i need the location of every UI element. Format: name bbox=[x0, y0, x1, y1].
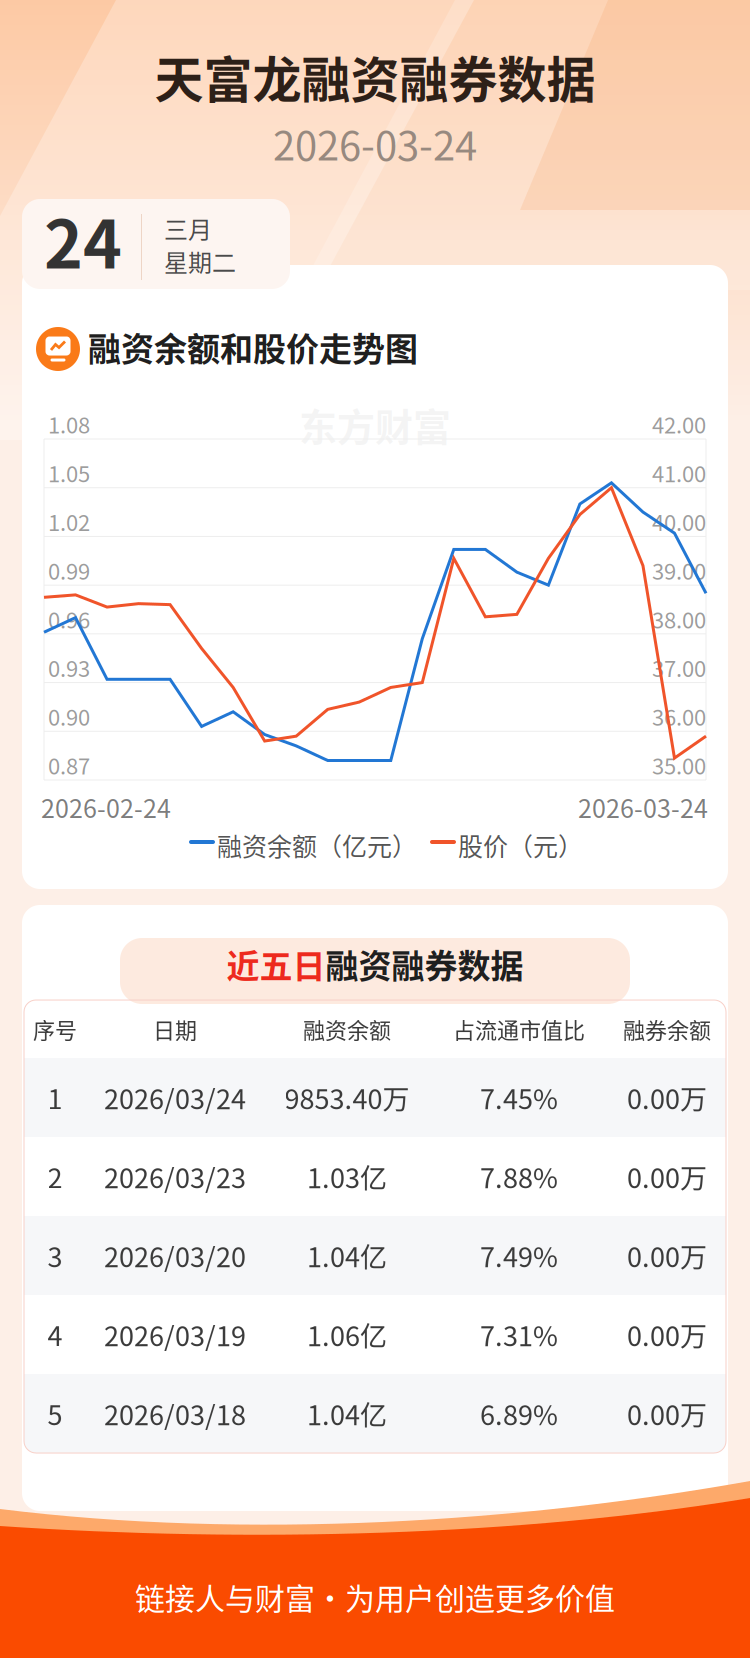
staticText: 5 bbox=[47, 1394, 62, 1433]
staticText: 2 bbox=[47, 1157, 62, 1196]
staticText: 1.04亿 bbox=[307, 1236, 387, 1275]
staticText: 1.06亿 bbox=[307, 1315, 387, 1354]
staticText: 42.00 bbox=[652, 408, 706, 440]
staticText: 0.00万 bbox=[627, 1157, 707, 1196]
staticText: 近五日 bbox=[226, 940, 325, 988]
staticText: 7.45% bbox=[480, 1078, 558, 1117]
staticText: 融资余额 bbox=[303, 1013, 391, 1045]
staticText: 2026-03-24 bbox=[273, 114, 477, 172]
staticText: 链接人与财富·为用户创造更多价值 bbox=[135, 1575, 615, 1618]
staticText: 39.00 bbox=[652, 554, 706, 586]
staticText: 37.00 bbox=[652, 652, 706, 683]
staticText: 1.02 bbox=[48, 505, 90, 537]
staticText: 0.99 bbox=[48, 554, 90, 586]
staticText: 35.00 bbox=[652, 749, 706, 781]
staticText: 0.00万 bbox=[627, 1315, 707, 1354]
staticText: 1 bbox=[47, 1078, 62, 1117]
staticText: 序号 bbox=[33, 1013, 77, 1045]
staticText: 融资余额和股价走势图 bbox=[88, 323, 418, 371]
staticText: 三月 bbox=[164, 211, 212, 246]
staticText: 占流通市值比 bbox=[453, 1013, 585, 1045]
staticText: 2026/03/23 bbox=[104, 1157, 246, 1196]
staticText: 3 bbox=[47, 1236, 62, 1275]
staticText: 1.04亿 bbox=[307, 1394, 387, 1433]
staticText: 0.96 bbox=[48, 603, 90, 635]
staticText: 36.00 bbox=[652, 700, 706, 732]
staticText: 2026/03/24 bbox=[104, 1078, 246, 1117]
staticText: 0.93 bbox=[48, 652, 90, 683]
staticText: 7.49% bbox=[480, 1236, 558, 1275]
staticText: 40.00 bbox=[652, 505, 706, 537]
staticText: 38.00 bbox=[652, 603, 706, 635]
staticText: 0.90 bbox=[48, 700, 90, 732]
staticText: 融资余额（亿元） bbox=[217, 827, 417, 863]
staticText: 星期二 bbox=[164, 244, 236, 279]
staticText: 2026/03/20 bbox=[104, 1236, 246, 1275]
staticText: 1.03亿 bbox=[307, 1157, 387, 1196]
staticText: 1.05 bbox=[48, 457, 90, 489]
staticText: 6.89% bbox=[480, 1394, 558, 1433]
staticText: 融券余额 bbox=[623, 1013, 711, 1045]
staticText: 7.31% bbox=[480, 1315, 558, 1354]
staticText: 2026/03/18 bbox=[104, 1394, 246, 1433]
staticText: 0.00万 bbox=[627, 1394, 707, 1433]
staticText: 1.08 bbox=[48, 408, 90, 440]
staticText: 2026/03/19 bbox=[104, 1315, 246, 1354]
staticText: 24 bbox=[44, 192, 122, 288]
staticText: 股价（元） bbox=[458, 827, 583, 863]
staticText: 天富龙融资融券数据 bbox=[154, 41, 595, 112]
staticText: 日期 bbox=[153, 1013, 197, 1045]
staticText: 41.00 bbox=[652, 457, 706, 489]
staticText: 0.00万 bbox=[627, 1078, 707, 1117]
staticText: 7.88% bbox=[480, 1157, 558, 1196]
staticText: 东方财富 bbox=[299, 397, 451, 452]
staticText: 0.87 bbox=[48, 749, 90, 781]
staticText: 9853.40万 bbox=[284, 1078, 409, 1117]
staticText: 2026-03-24 bbox=[578, 789, 708, 825]
staticText: 4 bbox=[47, 1315, 62, 1354]
staticText: 0.00万 bbox=[627, 1236, 707, 1275]
staticText: 2026-02-24 bbox=[41, 789, 171, 825]
staticText: 融资融券数据 bbox=[325, 940, 523, 988]
